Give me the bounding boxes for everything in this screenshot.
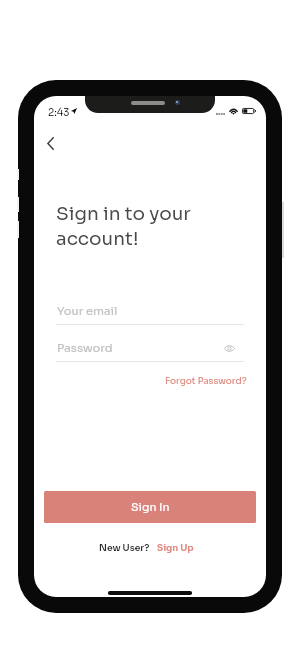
- button[interactable]: Forgot Password?: [165, 375, 247, 386]
- button[interactable]: Sign In: [44, 491, 256, 523]
- staticText: Forgot Password?: [165, 375, 247, 386]
- staticText: 2:43: [48, 106, 70, 119]
- button[interactable]: Show password: [221, 340, 237, 356]
- staticText: New User?: [99, 542, 150, 553]
- staticText: Sign in to your account!: [56, 202, 191, 250]
- staticText: Sign In: [131, 500, 170, 514]
- staticText: Password: [57, 341, 113, 355]
- staticText: Sign Up: [157, 542, 194, 553]
- staticText: Your email: [57, 304, 118, 318]
- button[interactable]: Sign Up: [157, 542, 194, 553]
- button[interactable]: Back: [37, 130, 63, 156]
